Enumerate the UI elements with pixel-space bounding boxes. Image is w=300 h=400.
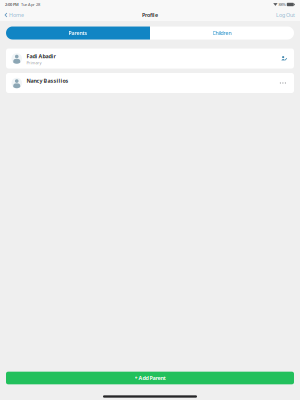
staticText: Profile — [142, 11, 158, 19]
button[interactable]: + Add Parent — [6, 372, 294, 384]
staticText: Tue Apr 28 — [19, 2, 40, 7]
button[interactable]: Home — [0, 9, 29, 21]
staticText: Nancy Bassilios — [26, 77, 68, 84]
staticText: + Add Parent — [134, 374, 165, 382]
staticText: Children — [212, 29, 231, 37]
staticText: Primary — [26, 60, 41, 65]
staticText: Fadi Abadir — [26, 53, 55, 60]
button[interactable]: Parents — [6, 26, 150, 39]
button[interactable]: Log Out — [271, 9, 300, 21]
staticText: Parents — [68, 29, 87, 37]
staticText: Log Out — [276, 11, 295, 19]
staticText: Home — [9, 11, 24, 19]
button[interactable]: Nancy Bassilios — [6, 73, 294, 93]
staticText: 2:00 PM — [5, 2, 19, 7]
staticText: 88% — [278, 2, 286, 7]
button[interactable]: Children — [150, 26, 294, 39]
button[interactable]: Fadi Abadir — [6, 48, 294, 68]
